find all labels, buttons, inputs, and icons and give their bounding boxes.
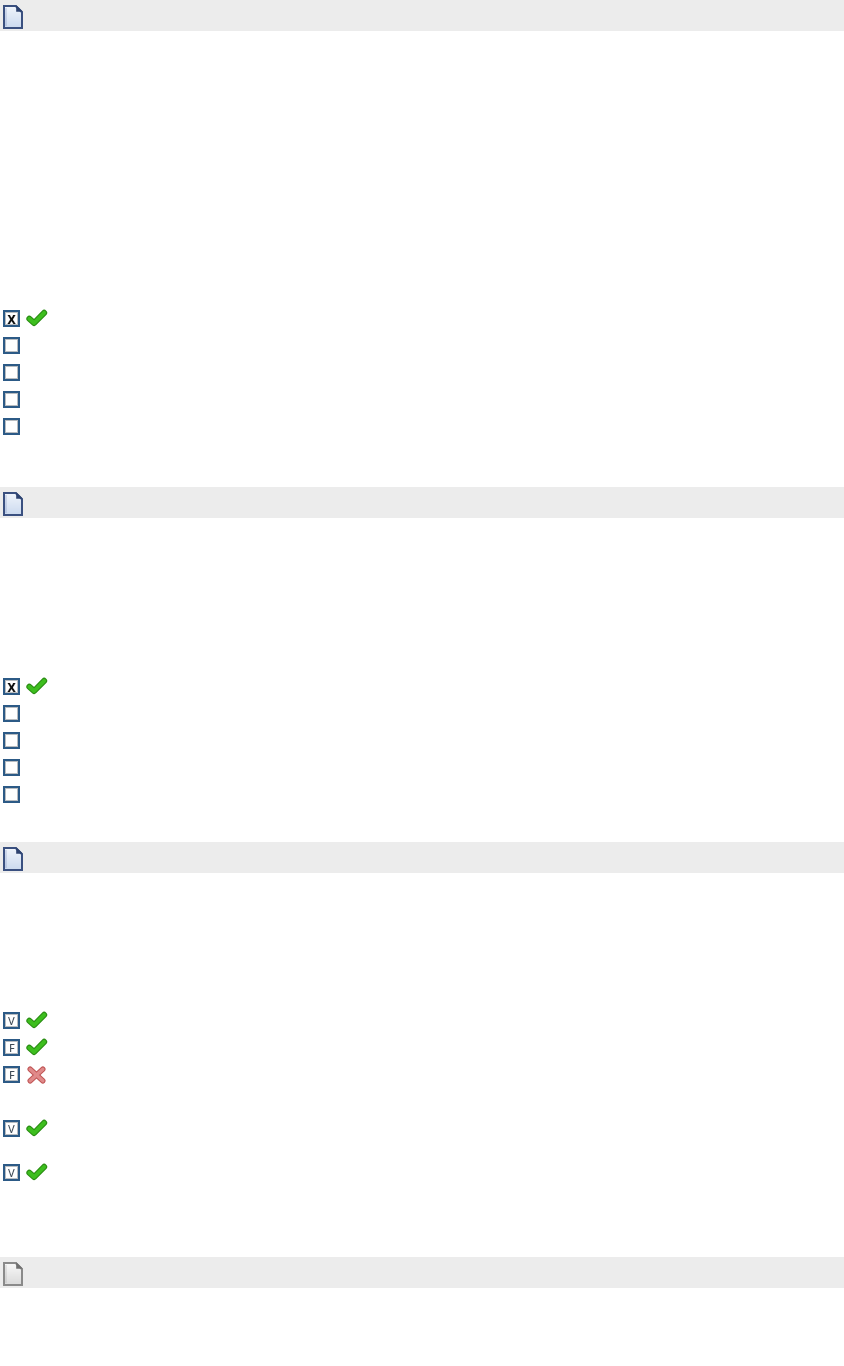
button[interactable]: Unchecked step xyxy=(0,386,844,413)
button[interactable]: Unchecked step xyxy=(0,700,844,727)
button[interactable]: Document section 4, disabled xyxy=(0,1257,844,1288)
button[interactable]: Unchecked step xyxy=(0,754,844,781)
button[interactable]: Unchecked step xyxy=(0,413,844,440)
button[interactable]: Document section 3 xyxy=(0,842,844,873)
button[interactable]: Failed, passed xyxy=(0,1034,844,1061)
button[interactable]: Unchecked step xyxy=(0,359,844,386)
staticText: F xyxy=(9,1040,15,1055)
button[interactable]: Unchecked step xyxy=(0,727,844,754)
staticText: X xyxy=(7,679,16,695)
button[interactable]: Failed step, verified xyxy=(0,673,844,700)
button[interactable]: Document section 1 xyxy=(0,0,844,31)
button[interactable]: Valid, passed xyxy=(0,1007,844,1034)
staticText: V xyxy=(8,1165,15,1180)
button[interactable]: Unchecked step xyxy=(0,781,844,808)
staticText: V xyxy=(8,1013,15,1028)
button[interactable]: Unchecked step xyxy=(0,332,844,359)
button[interactable]: Valid, passed xyxy=(0,1115,844,1142)
button[interactable]: Failed, error xyxy=(0,1061,844,1088)
button[interactable]: Valid, passed xyxy=(0,1159,844,1186)
button[interactable]: Document section 2 xyxy=(0,487,844,518)
staticText: X xyxy=(7,311,16,327)
staticText: V xyxy=(8,1121,15,1136)
staticText: F xyxy=(9,1067,15,1082)
button[interactable]: Failed step, verified xyxy=(0,305,844,332)
